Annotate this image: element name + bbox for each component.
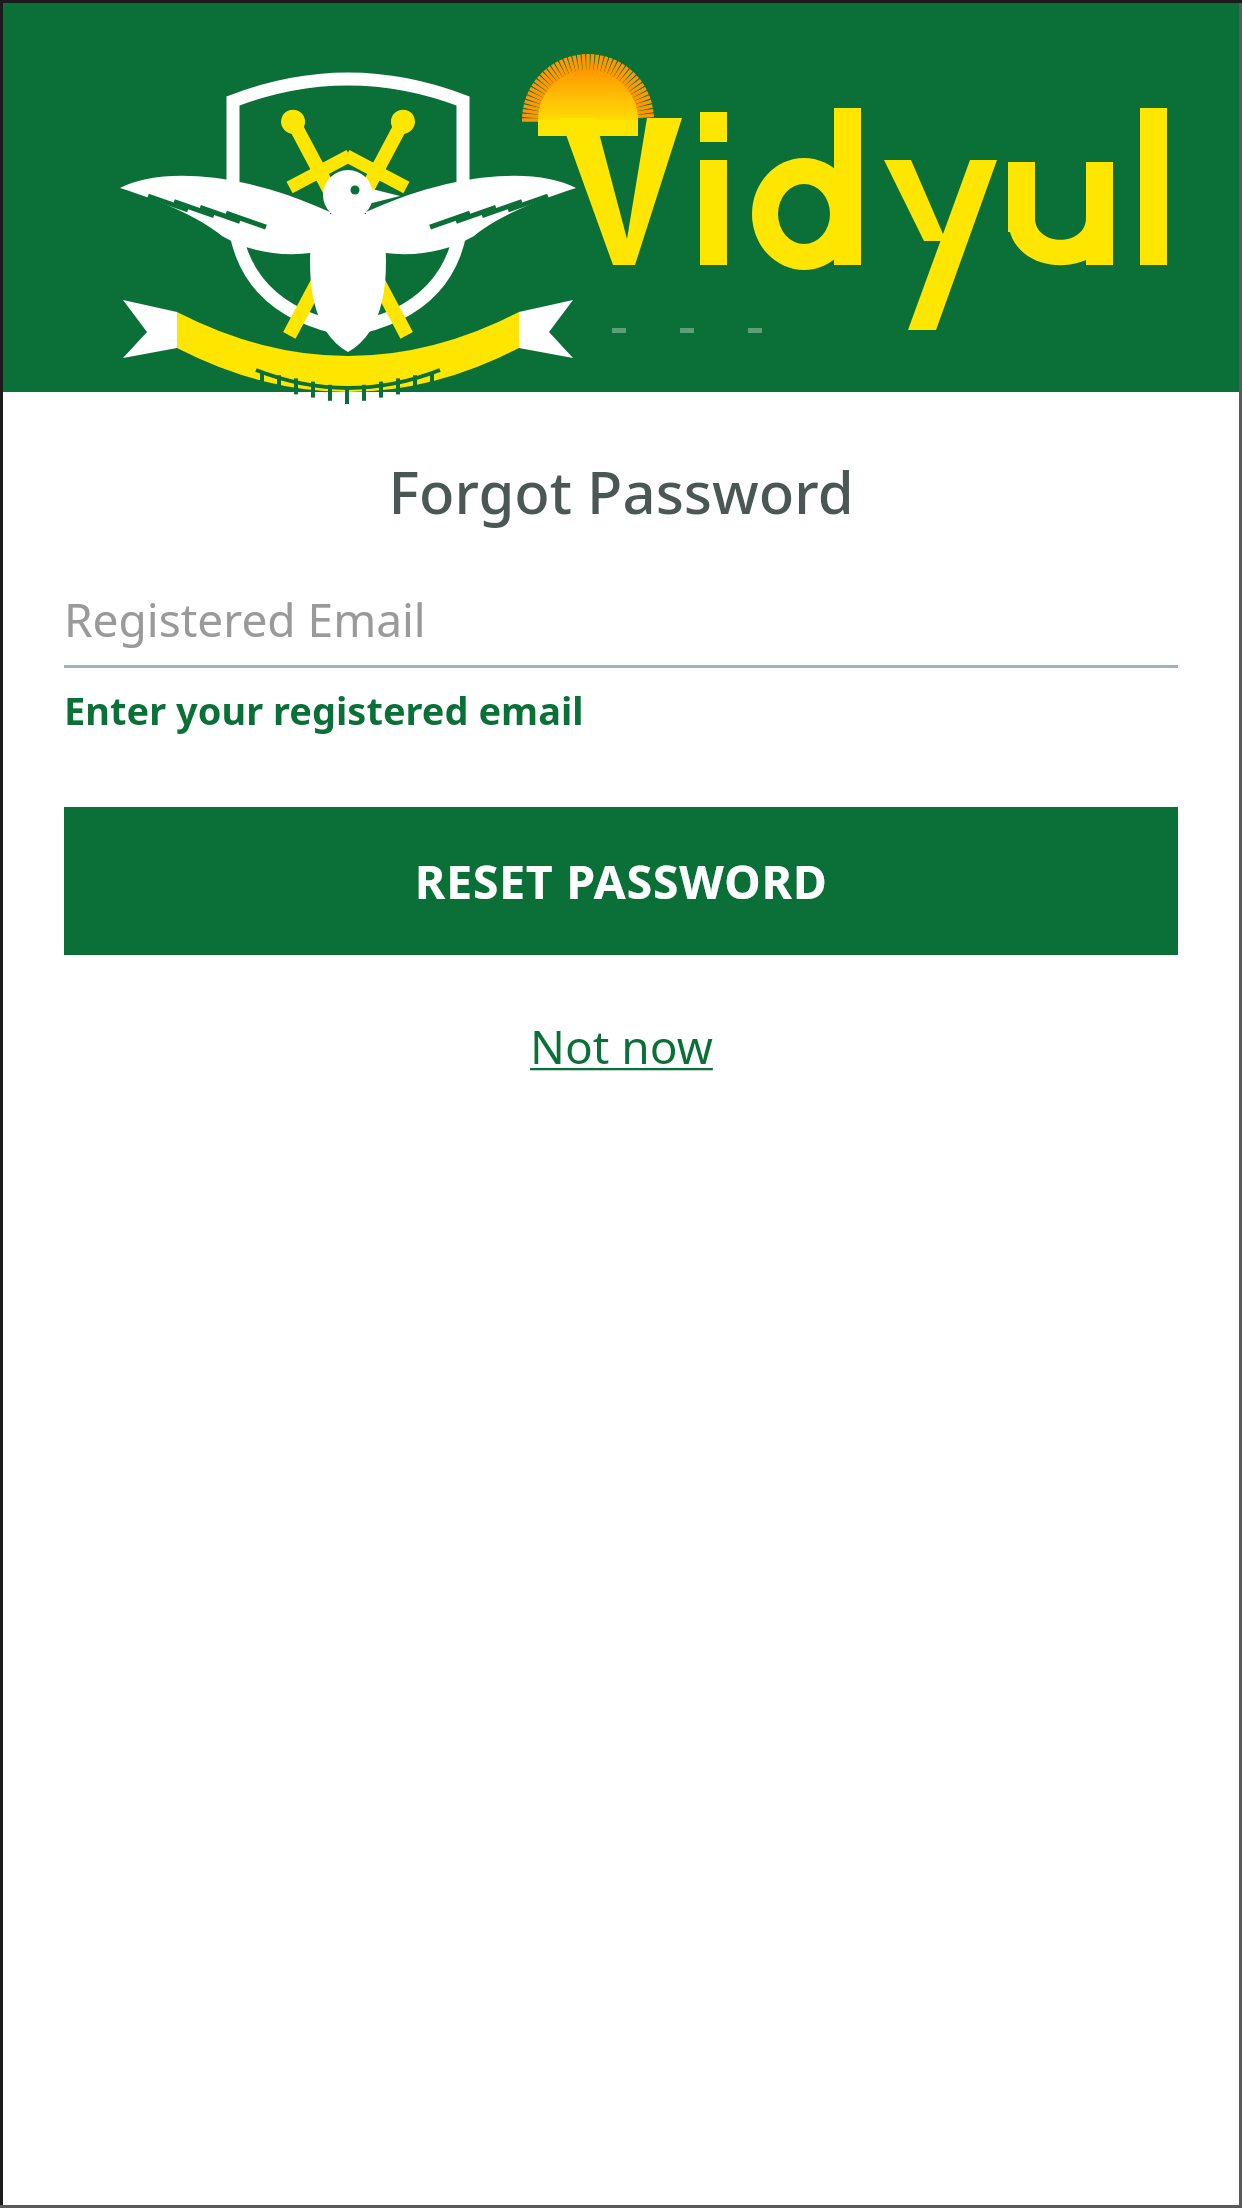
button[interactable]: Not now [516, 1007, 727, 1086]
staticText: Forgot Password [0, 452, 1242, 531]
staticText: Not now [530, 1015, 713, 1078]
staticText: RESET PASSWORD [415, 850, 828, 913]
button[interactable]: Registered Email [64, 573, 1178, 665]
other: Vidyul logo [0, 0, 1242, 392]
button[interactable]: RESET PASSWORD [64, 807, 1178, 955]
staticText: Enter your registered email [64, 684, 584, 736]
staticText: Registered Email [64, 588, 426, 651]
